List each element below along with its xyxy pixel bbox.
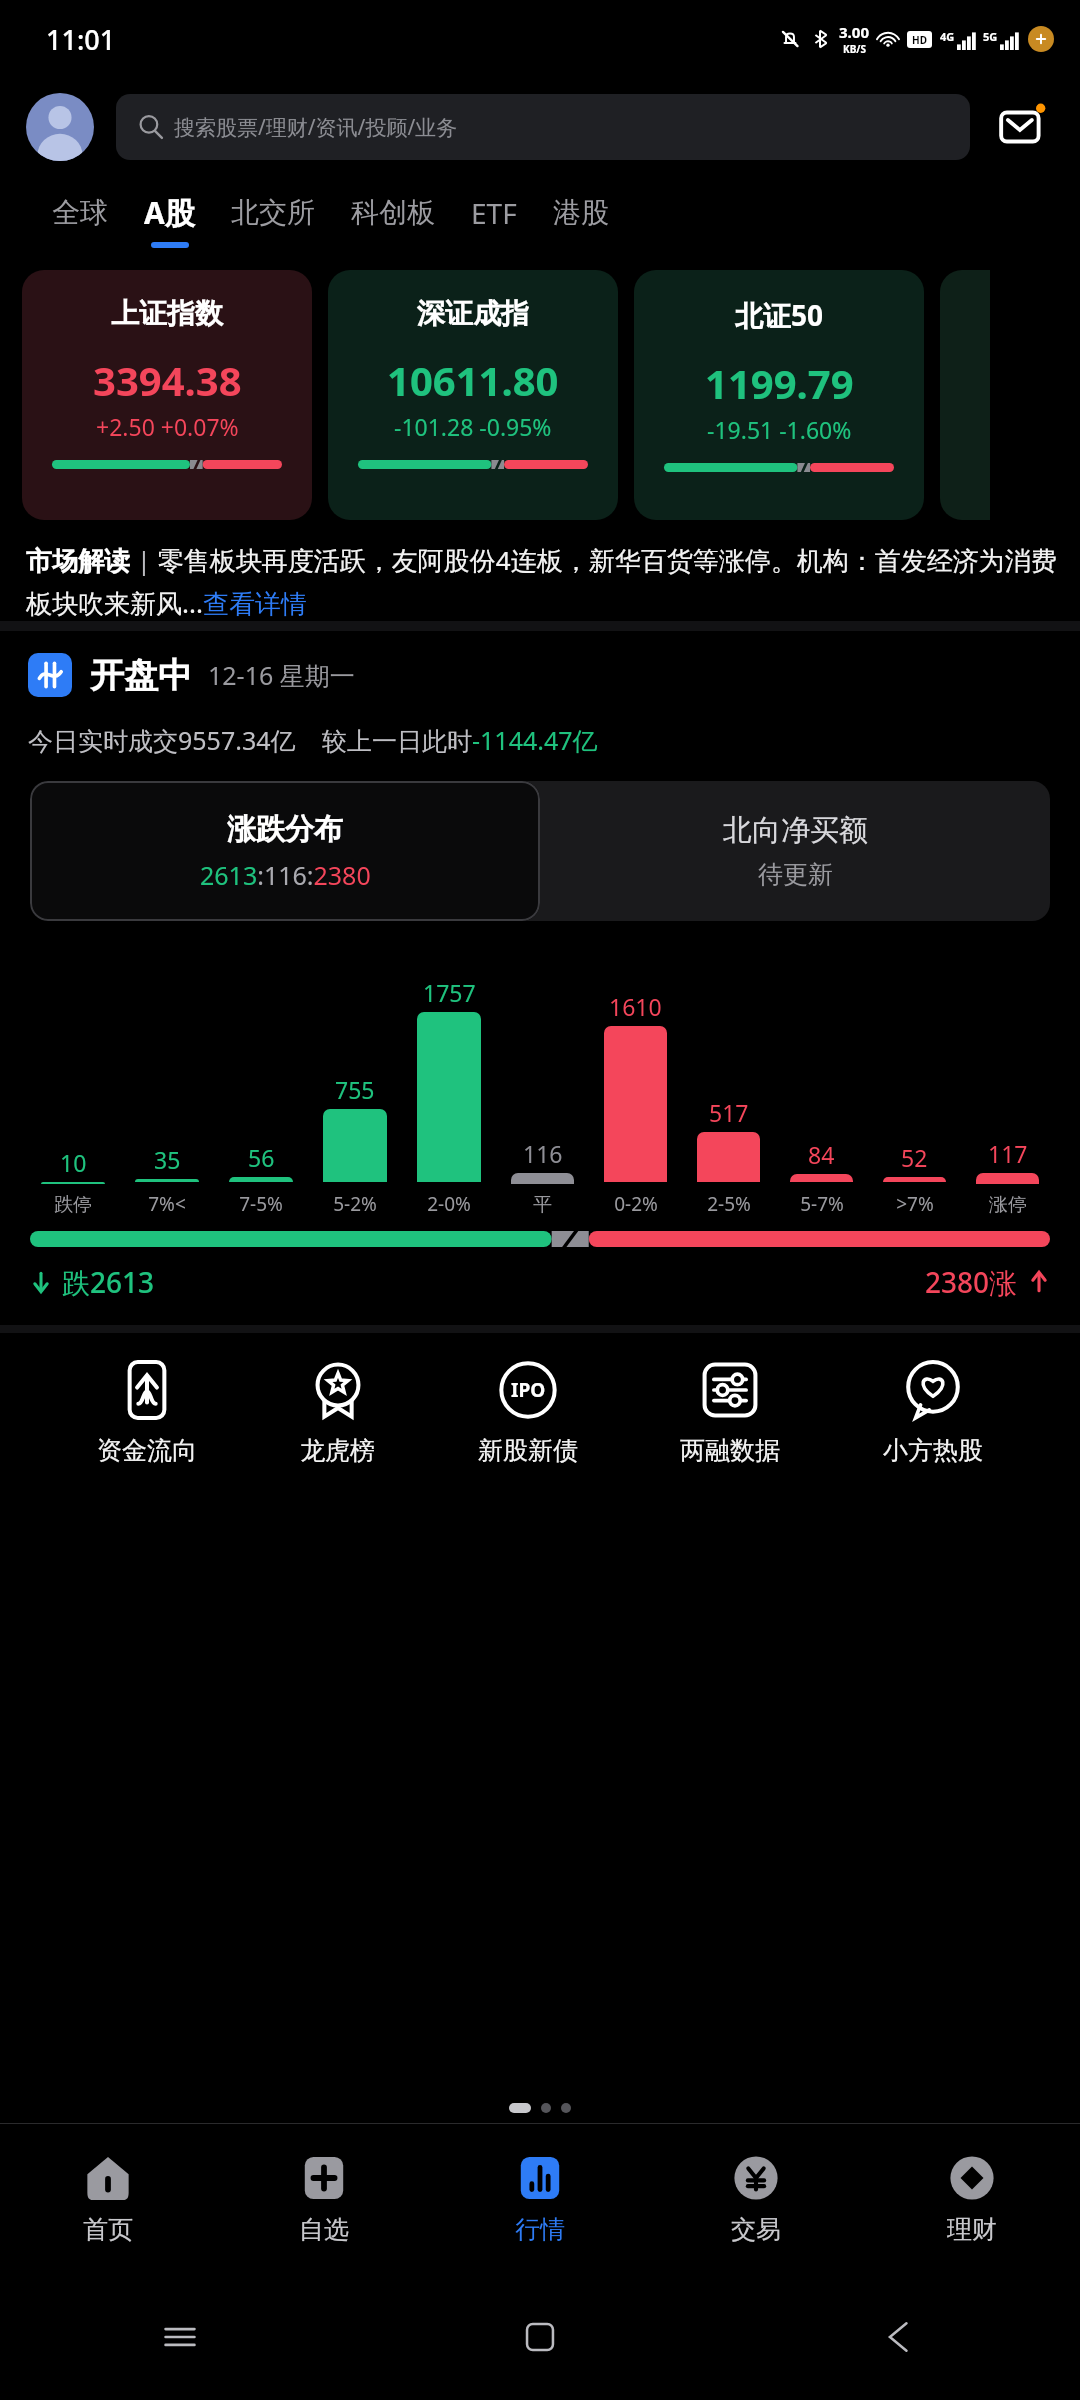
staticText: 10: [60, 1147, 87, 1178]
staticText: 跌2613: [62, 1263, 155, 1301]
button[interactable]: 上证指数: [22, 270, 312, 520]
staticText: 开盘中: [90, 654, 192, 697]
button[interactable]: 深证成指: [328, 270, 618, 520]
button[interactable]: 北证50: [634, 270, 924, 520]
button[interactable]: IPO: [472, 1359, 584, 1466]
staticText: 龙虎榜: [300, 1435, 375, 1466]
button[interactable]: 自选: [216, 2124, 432, 2274]
button[interactable]: 全球: [34, 195, 126, 245]
staticText: 深证成指: [417, 296, 529, 331]
staticText: 行情: [515, 2214, 565, 2245]
staticText: 涨跌分布: [227, 811, 343, 848]
staticText: >7%: [896, 1191, 934, 1217]
button[interactable]: 北向净买额: [540, 781, 1050, 921]
staticText: 自选: [299, 2214, 349, 2245]
staticText: 3394.38: [93, 353, 242, 407]
staticText: 北证50: [735, 296, 824, 334]
staticText: 2613:116:2380: [200, 858, 371, 892]
staticText: 0-2%: [614, 1191, 658, 1217]
staticText: 517: [709, 1097, 749, 1128]
button[interactable]: 涨跌分布: [30, 781, 540, 921]
staticText: 7%<: [148, 1191, 186, 1217]
staticText: 市场解读 | 零售板块再度活跃，友阿股份4连板，新华百货等涨停。机构：首发经济为…: [26, 542, 1058, 621]
staticText: 上证指数: [111, 296, 223, 331]
staticText: IPO: [511, 1377, 546, 1403]
button[interactable]: 行情: [432, 2124, 648, 2274]
staticText: 3.00: [839, 22, 869, 42]
button[interactable]: 首页: [0, 2124, 216, 2274]
staticText: HD: [912, 33, 927, 47]
staticText: 搜索股票/理财/资讯/投顾/业务: [174, 113, 458, 142]
staticText: 首页: [83, 2214, 133, 2245]
staticText: 2-0%: [427, 1191, 471, 1217]
button[interactable]: 交易: [648, 2124, 864, 2274]
staticText: ETF: [471, 194, 517, 232]
staticText: 117: [988, 1138, 1028, 1169]
staticText: 港股: [553, 195, 609, 230]
button[interactable]: 科创板: [333, 195, 453, 245]
staticText: 5-7%: [800, 1191, 844, 1217]
staticText: 交易: [731, 2214, 781, 2245]
staticText: 资金流向: [97, 1435, 197, 1466]
staticText: 755: [335, 1074, 375, 1105]
staticText: 4G: [940, 29, 955, 44]
button[interactable]: Profile: [26, 93, 94, 161]
staticText: 52: [901, 1142, 928, 1173]
button[interactable]: 龙虎榜: [294, 1359, 381, 1466]
staticText: 5G: [983, 29, 998, 44]
staticText: 今日实时成交9557.34亿: [28, 723, 296, 757]
staticText: 较上一日此时-1144.47亿: [322, 723, 598, 757]
button[interactable]: 两融数据: [674, 1359, 786, 1466]
staticText: KB/S: [843, 42, 866, 56]
staticText: -19.51 -1.60%: [707, 414, 852, 445]
staticText: 北交所: [231, 195, 315, 230]
staticText: 5-2%: [333, 1191, 377, 1217]
staticText: 两融数据: [680, 1435, 780, 1466]
button[interactable]: 港股: [535, 195, 627, 245]
staticText: 2-5%: [707, 1191, 751, 1217]
staticText: 35: [154, 1144, 181, 1175]
button[interactable]: ETF: [453, 194, 535, 247]
button[interactable]: 北交所: [213, 195, 333, 245]
staticText: 10611.80: [387, 353, 559, 407]
button[interactable]: [940, 270, 990, 520]
button[interactable]: 资金流向: [91, 1359, 203, 1466]
staticText: 1610: [609, 991, 662, 1022]
staticText: 涨停: [989, 1193, 1027, 1217]
button[interactable]: Messages: [992, 96, 1054, 158]
staticText: 84: [808, 1139, 835, 1170]
button[interactable]: Back: [720, 2274, 1080, 2400]
staticText: +2.50 +0.07%: [96, 411, 239, 442]
button[interactable]: 理财: [864, 2124, 1080, 2274]
button[interactable]: 小方热股: [877, 1359, 989, 1466]
staticText: 116: [523, 1138, 563, 1169]
staticText: 北向净买额: [723, 812, 868, 849]
staticText: 科创板: [351, 195, 435, 230]
staticText: 2380涨: [925, 1263, 1018, 1301]
staticText: -101.28 -0.95%: [394, 411, 552, 442]
staticText: 理财: [947, 2214, 997, 2245]
staticText: 平: [533, 1193, 552, 1217]
staticText: 1757: [423, 977, 476, 1008]
staticText: 全球: [52, 195, 108, 230]
staticText: 小方热股: [883, 1435, 983, 1466]
staticText: 跌停: [54, 1193, 92, 1217]
staticText: 12-16 星期一: [208, 658, 355, 692]
staticText: A股: [144, 192, 195, 233]
staticText: 1199.79: [705, 356, 854, 410]
button[interactable]: 搜索股票/理财/资讯/投顾/业务: [116, 94, 970, 160]
staticText: 新股新债: [478, 1435, 578, 1466]
staticText: 待更新: [758, 859, 833, 890]
staticText: 11:01: [46, 21, 116, 58]
staticText: 7-5%: [239, 1191, 283, 1217]
button[interactable]: Recents: [0, 2274, 360, 2400]
staticText: 56: [248, 1142, 275, 1173]
button[interactable]: Home: [360, 2274, 720, 2400]
button[interactable]: A股: [126, 192, 213, 248]
